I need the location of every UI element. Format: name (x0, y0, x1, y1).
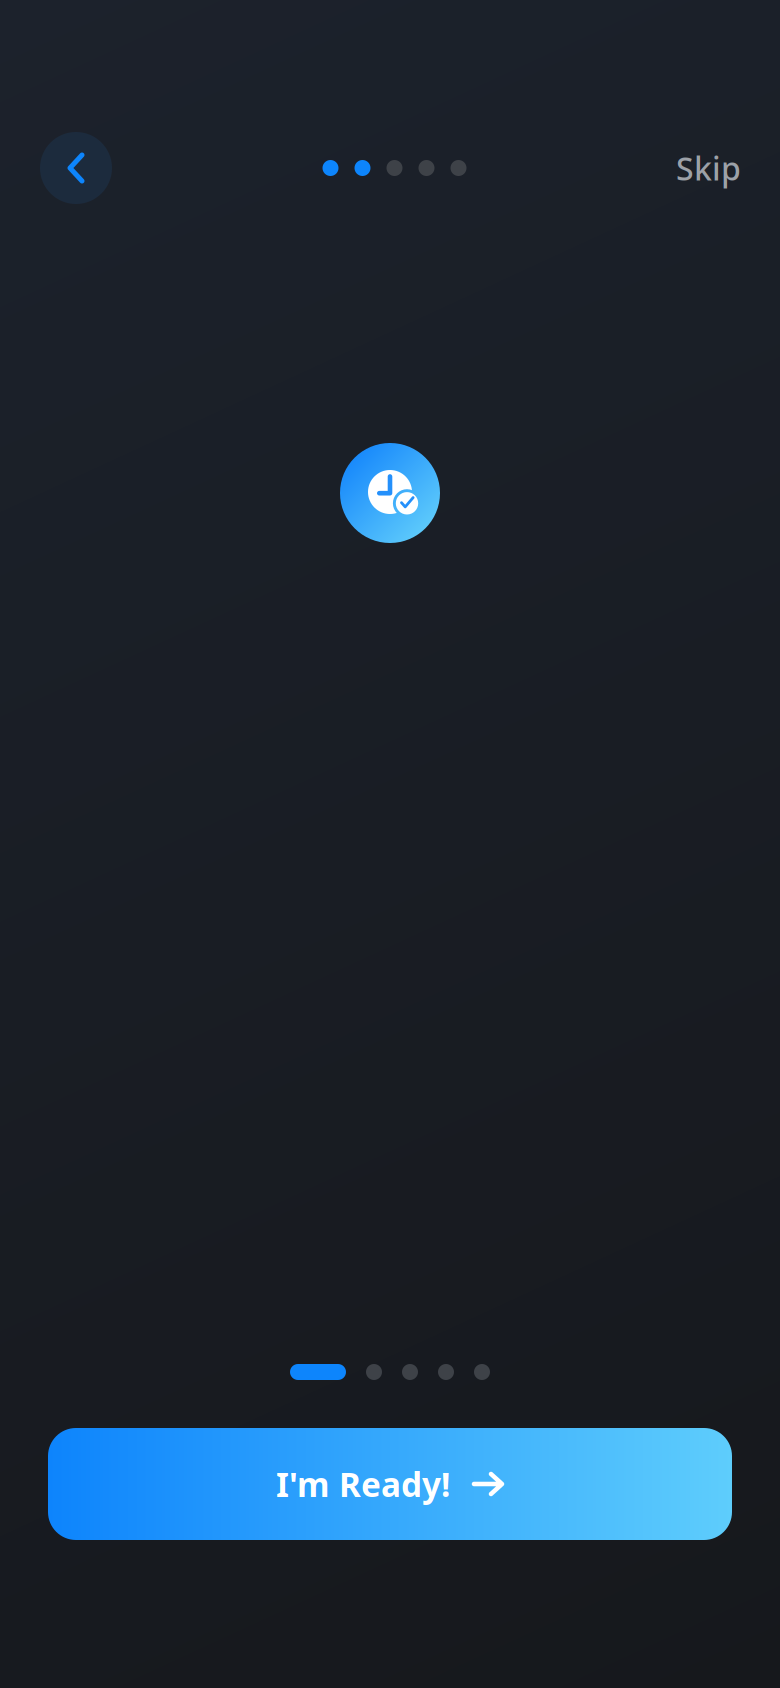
button[interactable]: Back (40, 132, 112, 204)
button[interactable]: Skip (676, 137, 741, 199)
staticText: Skip (676, 147, 741, 189)
staticText: I'm Ready! (276, 1462, 450, 1506)
button[interactable]: I'm Ready! (48, 1428, 732, 1540)
